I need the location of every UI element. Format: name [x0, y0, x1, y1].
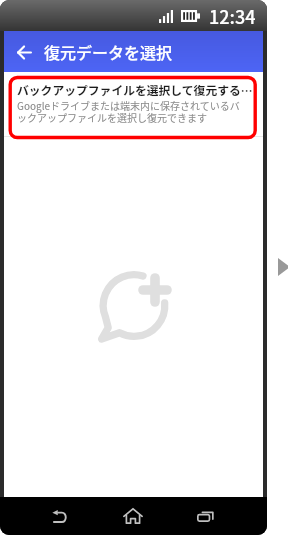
staticText: Googleドライブまたは端末内に保存されているバックアップファイルを選択し復元… — [17, 98, 246, 125]
staticText: バックアップファイルを選択して復元する… — [17, 81, 253, 98]
staticText: 復元データを選択 — [44, 40, 173, 63]
button[interactable]: Back — [9, 37, 39, 67]
button[interactable]: バックアップファイルを選択して復元する… — [4, 77, 263, 136]
button[interactable]: Recents — [188, 497, 224, 535]
button[interactable]: Back — [42, 497, 78, 535]
button[interactable]: Next — [276, 256, 288, 280]
staticText: 12:34 — [209, 3, 256, 29]
button[interactable]: Home — [115, 497, 151, 535]
